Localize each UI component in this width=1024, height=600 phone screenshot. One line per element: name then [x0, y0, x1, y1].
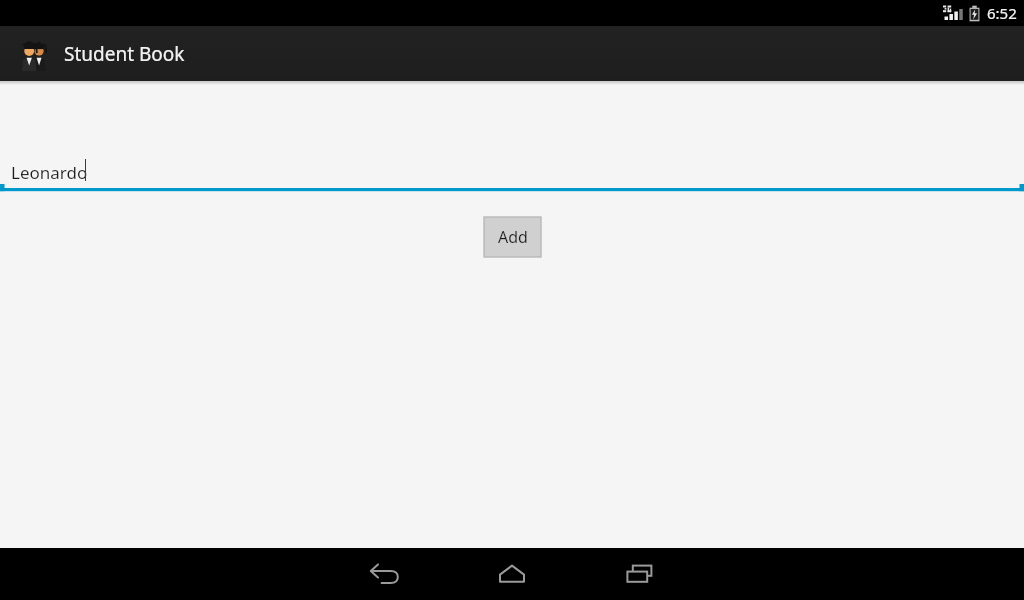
- button[interactable]: Leonardo: [0, 155, 1024, 195]
- staticText: Add: [498, 226, 528, 248]
- staticText: Student Book: [64, 41, 185, 67]
- button[interactable]: Add: [484, 217, 541, 257]
- button[interactable]: Back: [346, 548, 422, 600]
- staticText: Leonardo: [11, 161, 88, 184]
- staticText: 6:52: [987, 3, 1017, 23]
- button[interactable]: Recent apps: [602, 548, 678, 600]
- button[interactable]: Home: [474, 548, 550, 600]
